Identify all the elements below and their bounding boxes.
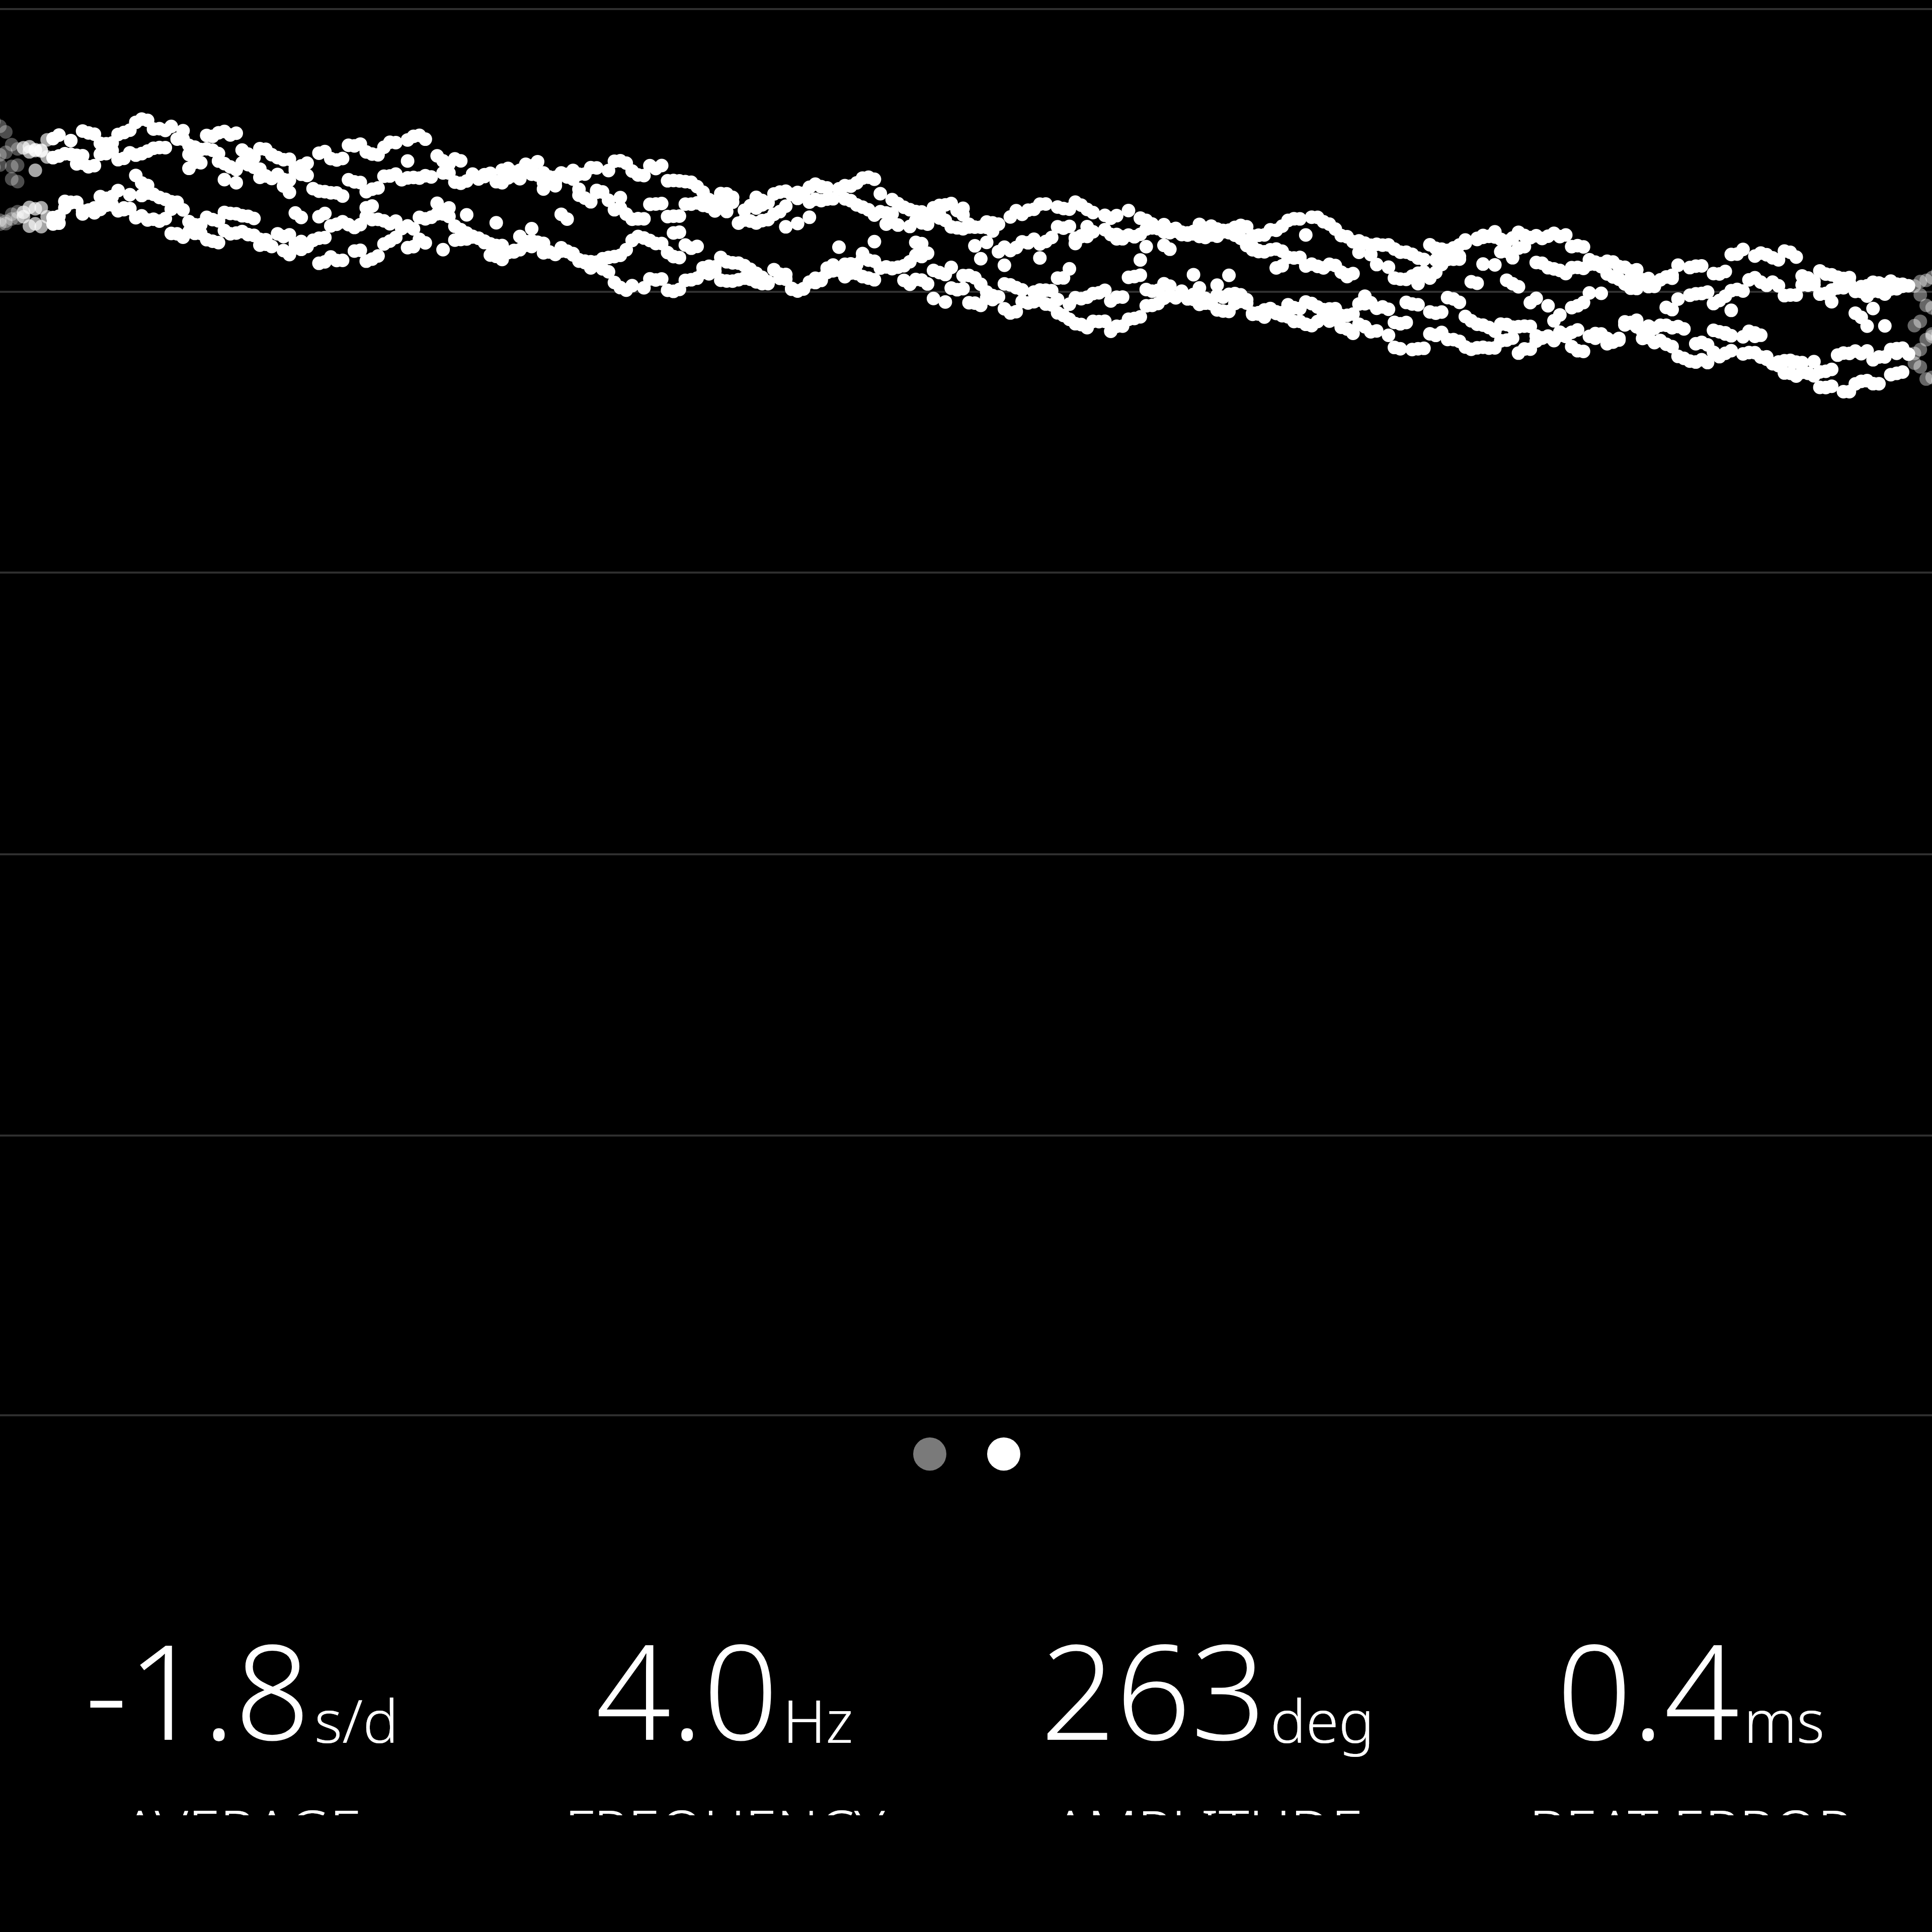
button[interactable]: 4.0 xyxy=(483,1599,966,1815)
staticText: 4.0 xyxy=(596,1599,779,1779)
staticText: s/d xyxy=(314,1679,398,1760)
staticText: 0.4 xyxy=(1557,1599,1740,1779)
staticText: FREQUENCY xyxy=(565,1791,885,1815)
staticText: 263 xyxy=(1040,1599,1266,1779)
staticText: AMPLITUDE xyxy=(1053,1791,1363,1815)
staticText: Hz xyxy=(783,1679,853,1760)
button[interactable]: 263 xyxy=(966,1599,1449,1815)
staticText: -1.8 xyxy=(85,1599,310,1779)
staticText: ms xyxy=(1744,1679,1825,1760)
button[interactable]: -1.8 xyxy=(0,1599,483,1815)
staticText: AVERAGE xyxy=(122,1791,361,1815)
button[interactable]: Rate trace graph xyxy=(0,0,1932,1415)
staticText: deg xyxy=(1270,1679,1375,1760)
button[interactable]: Page 2 of 2 xyxy=(913,1437,1020,1471)
staticText: BEAT ERROR xyxy=(1529,1791,1852,1815)
button[interactable]: 0.4 xyxy=(1449,1599,1932,1815)
